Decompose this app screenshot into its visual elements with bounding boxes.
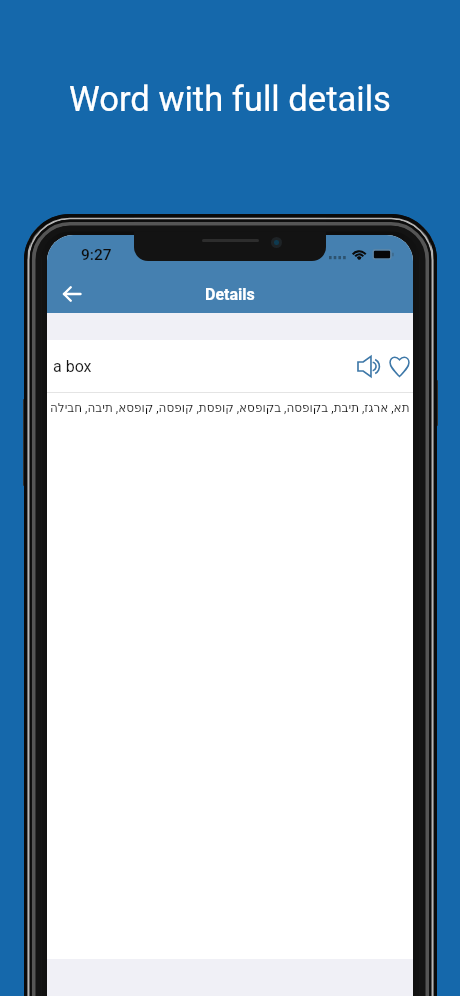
staticText: Word with full details: [0, 79, 460, 120]
button[interactable]: Back: [58, 281, 88, 307]
button[interactable]: Add to favorites: [389, 356, 410, 378]
button[interactable]: Play pronunciation: [357, 355, 379, 378]
staticText: Details: [205, 285, 255, 304]
staticText: תא, ארגז, תיבת, בקופסה, בקופסא, קופסת, ק…: [50, 401, 410, 415]
staticText: a box: [53, 357, 92, 376]
staticText: 9:27: [81, 246, 112, 264]
